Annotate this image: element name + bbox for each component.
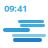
staticText: 09:41	[4, 2, 27, 14]
